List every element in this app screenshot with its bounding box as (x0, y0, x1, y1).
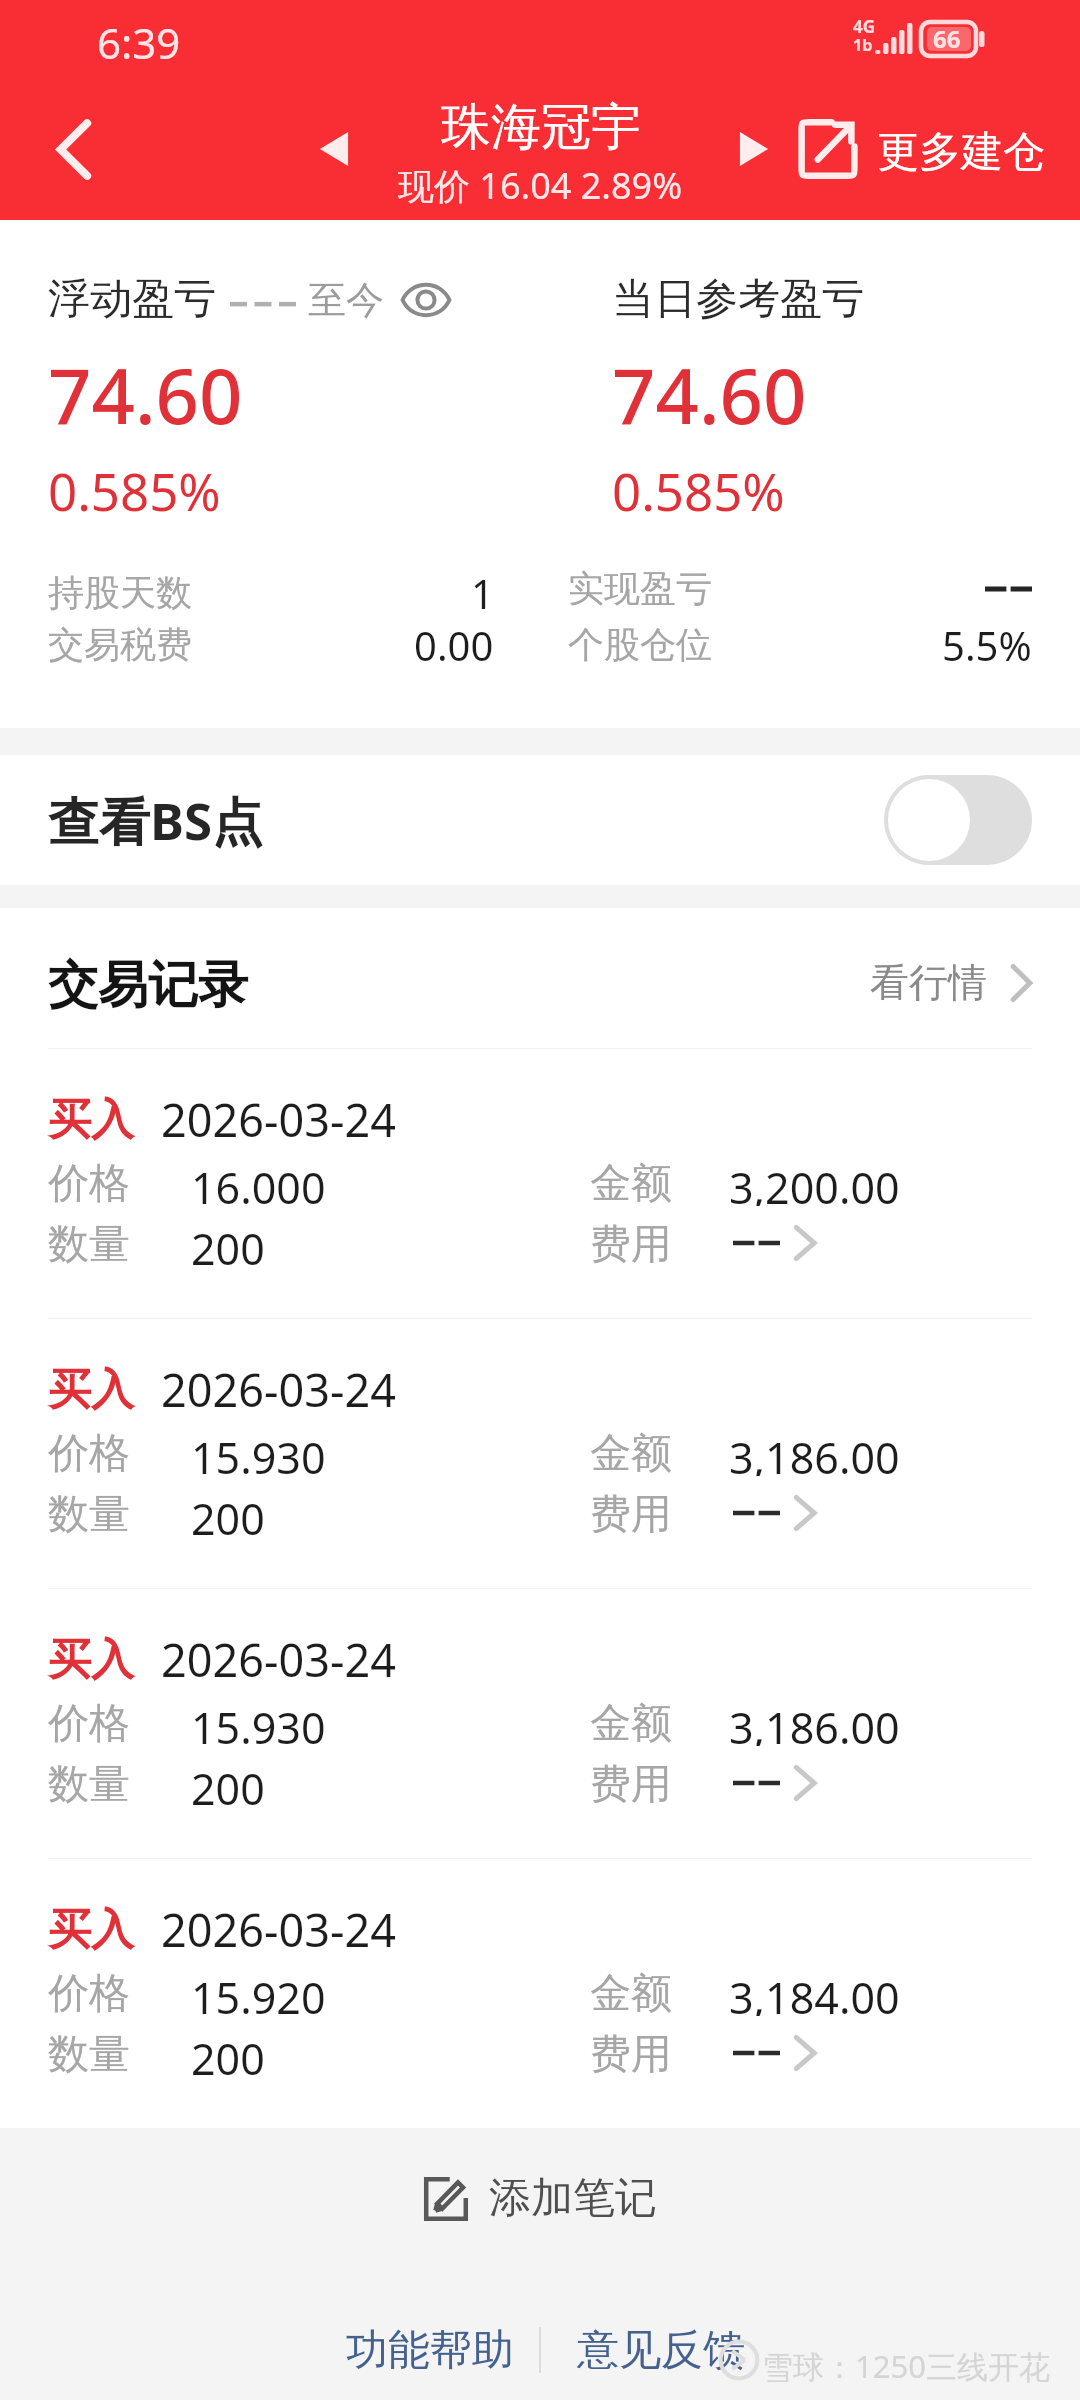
staticText: 看行情 (870, 958, 987, 1007)
button[interactable]: Previous stock (312, 124, 356, 174)
staticText: 雪球：1250三线开花 (762, 2345, 1050, 2387)
staticText: 珠海冠宇 (441, 96, 641, 159)
staticText: 交易记录 (48, 954, 248, 1017)
staticText: 200 (191, 1759, 265, 1807)
staticText: 买入 (48, 1633, 134, 1687)
staticText: 4G (853, 15, 876, 38)
staticText: 15.930 (191, 1698, 326, 1746)
staticText: 查看BS点 (48, 785, 264, 855)
staticText: 16.000 (191, 1158, 326, 1206)
staticText: 2026-03-24 (161, 1899, 396, 1960)
staticText: 买入 (48, 1903, 134, 1957)
staticText: 个股仓位 (568, 622, 712, 667)
staticText: 现价 16.04 2.89% (398, 161, 683, 210)
staticText: 3,186.00 (729, 1428, 900, 1476)
staticText: 1b (853, 34, 873, 56)
staticText: 浮动盈亏 (48, 273, 216, 326)
staticText: 3,186.00 (729, 1698, 900, 1746)
staticText: 3,184.00 (729, 1968, 900, 2016)
staticText: 价格 (48, 1968, 130, 2016)
button[interactable]: 意见反馈 (577, 2324, 745, 2377)
button[interactable]: 买入 (0, 1319, 1080, 1588)
staticText: 费用 (590, 1759, 672, 1807)
staticText: 价格 (48, 1158, 130, 1206)
staticText: 0.585% (48, 456, 221, 525)
staticText: 数量 (48, 1489, 130, 1537)
staticText: 2026-03-24 (161, 1089, 396, 1150)
staticText: 买入 (48, 1363, 134, 1417)
staticText: 3,200.00 (729, 1158, 900, 1206)
button[interactable]: Toggle amount visibility (400, 277, 452, 323)
button[interactable]: Next stock (732, 124, 776, 174)
staticText: 2026-03-24 (161, 1629, 396, 1690)
button[interactable]: 买入 (0, 1589, 1080, 1858)
button[interactable]: 更多建仓 (798, 118, 1045, 180)
staticText: 添加笔记 (489, 2172, 657, 2225)
staticText: 费用 (590, 2029, 672, 2077)
staticText: 15.930 (191, 1428, 326, 1476)
button[interactable]: 添加笔记 (0, 2172, 1080, 2225)
staticText: 金额 (590, 1158, 672, 1206)
staticText: 费用 (590, 1219, 672, 1267)
staticText: 数量 (48, 1219, 130, 1267)
staticText: 200 (191, 1219, 265, 1267)
staticText: 买入 (48, 1093, 134, 1147)
button[interactable]: 功能帮助 (346, 2324, 514, 2377)
staticText: 至今 (308, 276, 384, 324)
staticText: 74.60 (48, 343, 243, 447)
staticText: 数量 (48, 1759, 130, 1807)
staticText: 2026-03-24 (161, 1359, 396, 1420)
staticText: 价格 (48, 1428, 130, 1476)
staticText: 费用 (590, 1489, 672, 1537)
staticText: 0.585% (612, 456, 785, 525)
button[interactable]: 买入 (0, 1049, 1080, 1318)
button[interactable]: 查看BS点 (0, 755, 1080, 885)
staticText: 0.00 (414, 618, 494, 670)
staticText: 价格 (48, 1698, 130, 1746)
staticText: 74.60 (612, 343, 807, 447)
staticText: 金额 (590, 1698, 672, 1746)
staticText: 66 (933, 22, 961, 55)
button[interactable]: Back (30, 95, 120, 189)
staticText: 数量 (48, 2029, 130, 2077)
staticText: 1 (471, 566, 494, 618)
staticText: 5.5% (942, 618, 1032, 670)
button[interactable]: 买入 (0, 1859, 1080, 2128)
staticText: 金额 (590, 1428, 672, 1476)
staticText: 当日参考盈亏 (612, 273, 864, 326)
staticText: 200 (191, 2029, 265, 2077)
staticText: 持股天数 (48, 570, 192, 615)
staticText: 实现盈亏 (568, 566, 712, 611)
staticText: 金额 (590, 1968, 672, 2016)
staticText: 交易税费 (48, 622, 192, 667)
staticText: 6:39 (97, 14, 181, 71)
staticText: 更多建仓 (877, 126, 1045, 179)
staticText: 200 (191, 1489, 265, 1537)
button[interactable]: 看行情 (870, 958, 1032, 1007)
staticText: 15.920 (191, 1968, 326, 2016)
